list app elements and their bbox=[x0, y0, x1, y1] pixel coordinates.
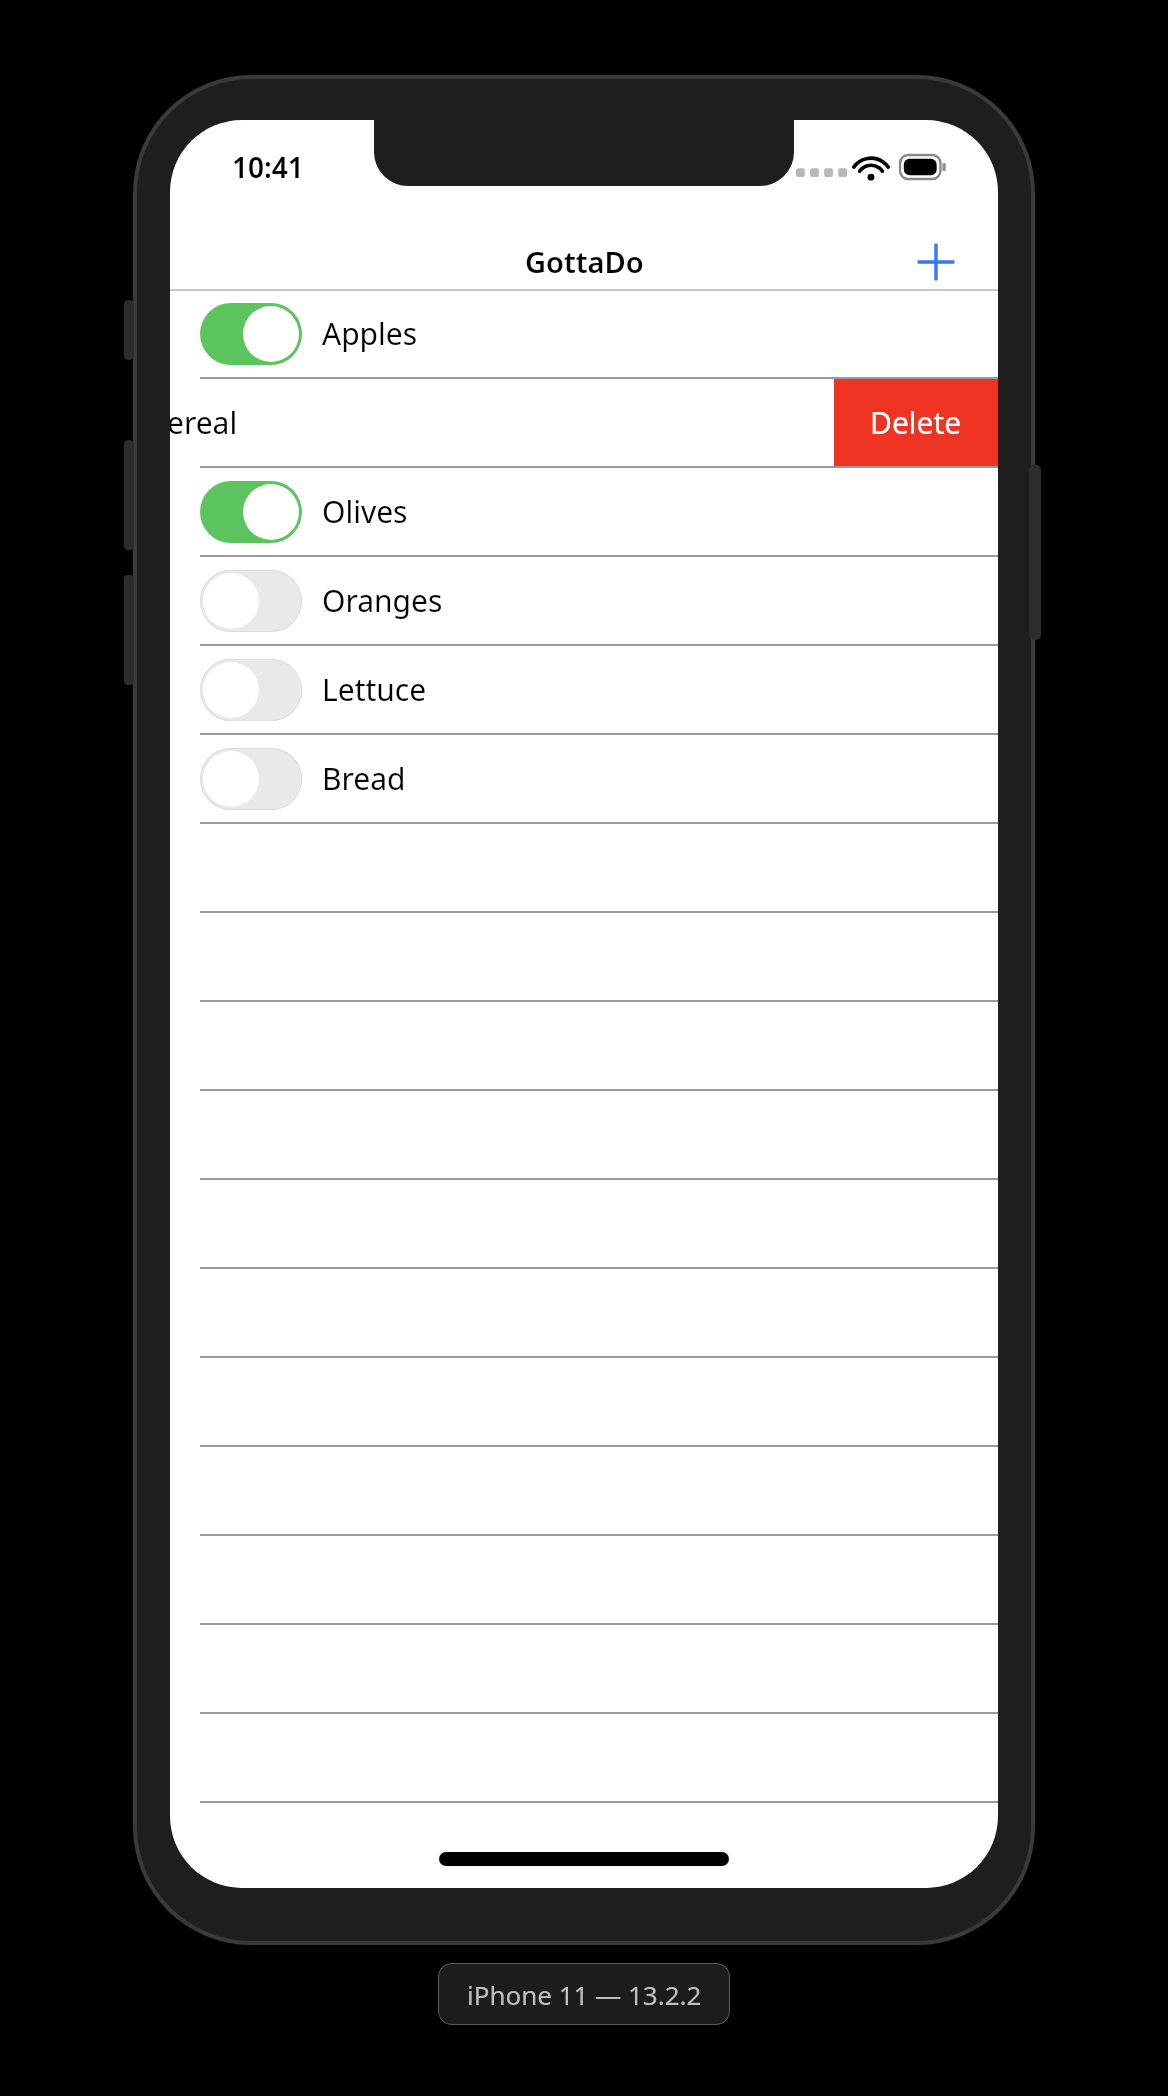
button[interactable]: Add item bbox=[908, 234, 964, 289]
staticText: Lettuce bbox=[322, 669, 427, 710]
button[interactable]: Off bbox=[200, 659, 302, 721]
button[interactable]: Cereal bbox=[170, 379, 998, 466]
button[interactable]: Off bbox=[170, 646, 998, 733]
button[interactable]: Off bbox=[200, 570, 302, 632]
button[interactable]: iPhone 11 — 13.2.2 bbox=[438, 1963, 730, 2025]
staticText: Apples bbox=[322, 313, 418, 354]
button[interactable]: On bbox=[200, 303, 302, 365]
staticText: Olives bbox=[322, 491, 408, 532]
staticText: Bread bbox=[322, 758, 406, 799]
button[interactable]: On bbox=[170, 290, 998, 377]
button[interactable]: On bbox=[200, 481, 302, 543]
button[interactable]: On bbox=[170, 468, 998, 555]
staticText: iPhone 11 — 13.2.2 bbox=[467, 1977, 702, 2012]
button[interactable]: Off bbox=[200, 748, 302, 810]
staticText: GottaDo bbox=[525, 242, 644, 281]
staticText: Cereal bbox=[170, 402, 238, 443]
button[interactable]: Off bbox=[170, 557, 998, 644]
staticText: Delete bbox=[870, 402, 962, 443]
staticText: Oranges bbox=[322, 580, 443, 621]
button[interactable]: Off bbox=[170, 735, 998, 822]
button[interactable]: Delete bbox=[834, 379, 998, 466]
staticText: 10:41 bbox=[232, 148, 304, 186]
